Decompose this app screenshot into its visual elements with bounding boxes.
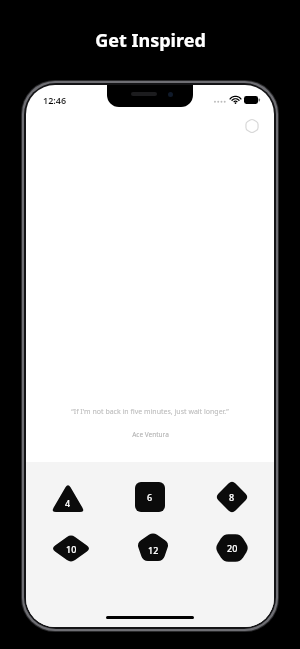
button[interactable]: 12 (135, 531, 171, 565)
staticText: “If I'm not back in five minutes, just w… (71, 407, 229, 417)
staticText: 8 (229, 491, 235, 503)
staticText: 4 (65, 497, 71, 509)
button[interactable]: 6 (135, 482, 165, 512)
staticText: 20 (227, 542, 238, 554)
staticText: 12 (148, 544, 159, 556)
button[interactable]: Dice settings (244, 118, 260, 134)
button[interactable]: 20 (214, 531, 250, 565)
staticText: 6 (147, 491, 153, 503)
staticText: Ace Ventura (132, 430, 169, 439)
staticText: 10 (66, 543, 77, 555)
button[interactable]: 10 (50, 533, 92, 564)
staticText: Get Inspired (95, 28, 206, 53)
button[interactable]: 8 (214, 479, 250, 515)
staticText: 12:46 (43, 94, 67, 106)
button[interactable]: 4 (50, 482, 86, 513)
